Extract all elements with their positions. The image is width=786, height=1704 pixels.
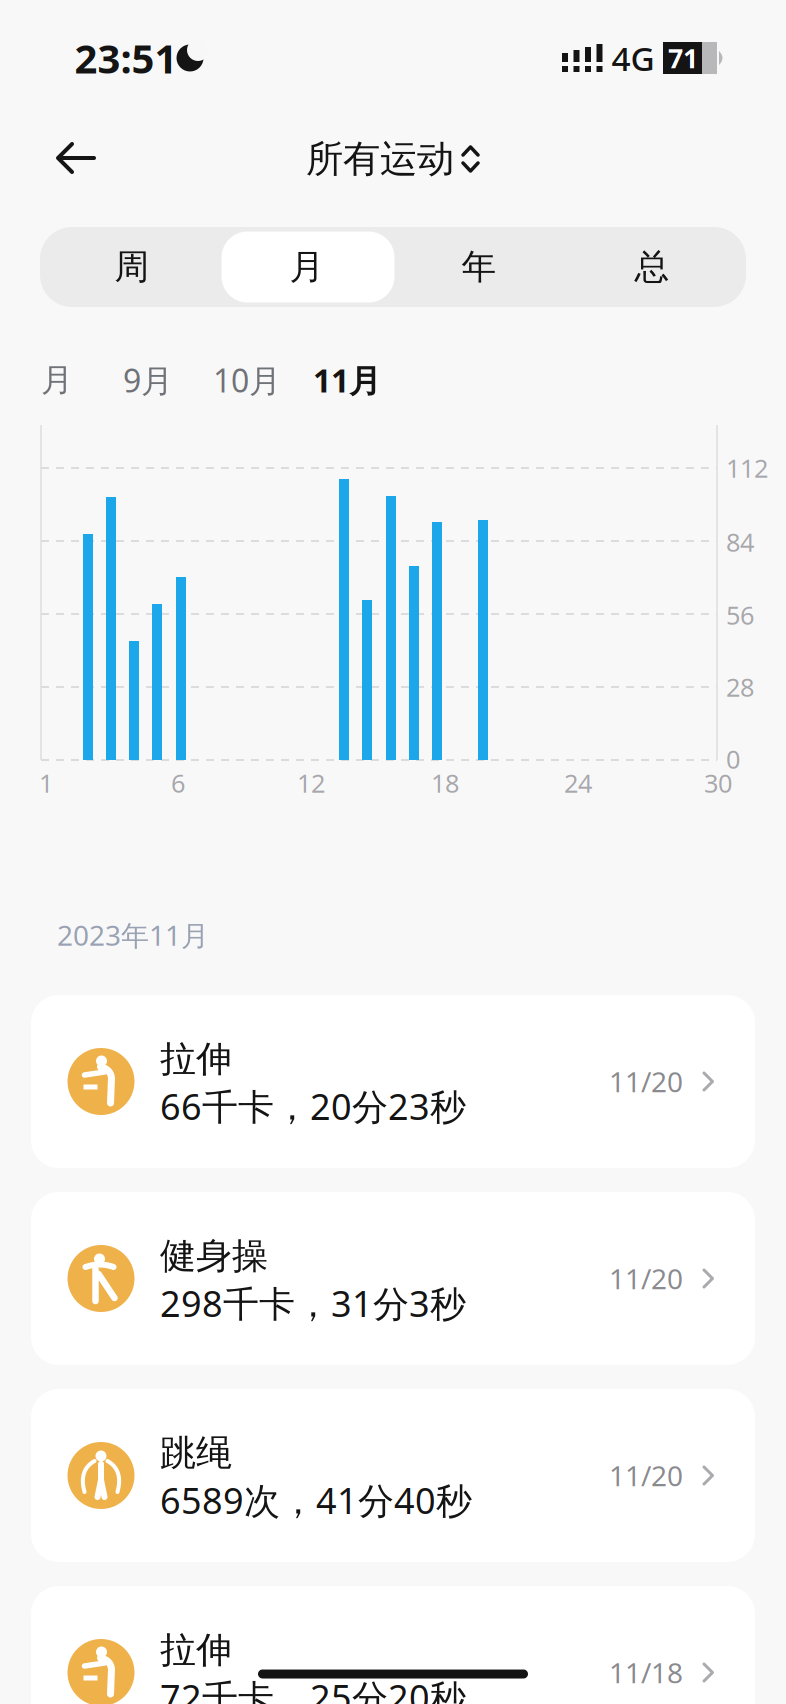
staticText: 0 xyxy=(726,742,740,776)
staticText: 2023年11月 xyxy=(57,916,209,954)
staticText: 56 xyxy=(726,598,754,632)
staticText: 月 xyxy=(289,246,324,288)
button[interactable]: 月 xyxy=(27,355,87,405)
button[interactable]: Back xyxy=(46,128,106,188)
staticText: 4G xyxy=(611,36,654,80)
staticText: 11/20 xyxy=(609,1260,683,1297)
staticText: 所有运动 xyxy=(306,136,454,182)
staticText: 112 xyxy=(726,451,768,485)
staticText: 1 xyxy=(39,766,53,800)
staticText: 72千卡，25分20秒 xyxy=(160,1673,466,1704)
staticText: 23:51 xyxy=(74,31,177,84)
staticText: 跳绳 xyxy=(160,1431,232,1475)
staticText: 298千卡，31分3秒 xyxy=(160,1279,466,1327)
button[interactable]: 10月 xyxy=(197,355,297,405)
staticText: 11/18 xyxy=(609,1654,683,1691)
staticText: 6589次，41分40秒 xyxy=(160,1476,472,1524)
staticText: 24 xyxy=(564,766,592,800)
staticText: 总 xyxy=(634,246,669,288)
staticText: 年 xyxy=(461,246,496,288)
button[interactable]: 总 xyxy=(564,228,740,306)
staticText: 11月 xyxy=(313,359,381,401)
button[interactable]: 月 xyxy=(219,228,395,306)
staticText: 拉伸 xyxy=(160,1628,232,1672)
staticText: 周 xyxy=(114,246,149,288)
staticText: 18 xyxy=(431,766,459,800)
button[interactable]: 拉伸 xyxy=(31,995,755,1168)
staticText: 月 xyxy=(41,360,73,400)
button[interactable]: 拉伸 xyxy=(31,1586,755,1704)
staticText: 拉伸 xyxy=(160,1037,232,1081)
staticText: 9月 xyxy=(123,359,173,401)
button[interactable]: 跳绳 xyxy=(31,1389,755,1562)
button[interactable]: 健身操 xyxy=(31,1192,755,1365)
staticText: 28 xyxy=(726,670,754,704)
staticText: 健身操 xyxy=(160,1234,268,1278)
button[interactable]: 9月 xyxy=(108,355,188,405)
staticText: 11/20 xyxy=(609,1457,683,1494)
button[interactable]: 周 xyxy=(44,228,220,306)
staticText: 71 xyxy=(668,40,698,76)
staticText: 66千卡，20分23秒 xyxy=(160,1082,466,1130)
staticText: 11/20 xyxy=(609,1063,683,1100)
button[interactable]: 年 xyxy=(391,228,567,306)
staticText: 30 xyxy=(704,766,732,800)
staticText: 6 xyxy=(171,766,185,800)
staticText: 12 xyxy=(297,766,325,800)
button[interactable]: 11月 xyxy=(297,355,397,405)
staticText: 84 xyxy=(726,525,754,559)
staticText: 10月 xyxy=(213,359,281,401)
button[interactable]: 所有运动 xyxy=(293,129,493,189)
